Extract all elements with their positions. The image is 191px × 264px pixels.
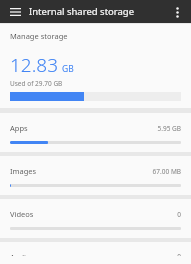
button[interactable]: Open navigation drawer — [7, 3, 24, 20]
button[interactable]: Manage storage — [0, 24, 191, 108]
staticText: 12.83 — [10, 52, 59, 78]
button[interactable]: More options — [169, 4, 185, 20]
staticText: 0 — [177, 210, 181, 219]
staticText: 5.95 GB — [157, 124, 181, 133]
staticText: Apps — [10, 123, 28, 133]
staticText: Internal shared storage — [29, 5, 135, 18]
button[interactable]: Apps — [0, 113, 191, 152]
button[interactable]: Videos — [0, 199, 191, 238]
staticText: 0 — [177, 252, 181, 256]
staticText: 67.00 MB — [152, 167, 181, 176]
staticText: Videos — [10, 209, 34, 219]
staticText: Audio — [10, 252, 31, 256]
button[interactable]: Images — [0, 156, 191, 195]
staticText: Used of 29.70 GB — [10, 79, 63, 88]
staticText: Manage storage — [10, 31, 68, 41]
staticText: GB — [62, 63, 74, 75]
staticText: Images — [10, 166, 37, 176]
button[interactable]: Audio — [0, 242, 191, 264]
